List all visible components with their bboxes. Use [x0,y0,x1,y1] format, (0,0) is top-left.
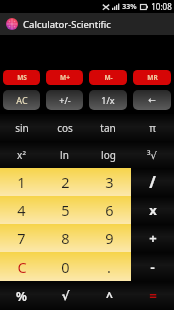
staticText: % [16,288,27,304]
staticText: 9 [105,228,114,248]
button[interactable]: 1/x [89,90,127,110]
staticText: ^ [106,288,113,304]
button[interactable]: % [0,281,43,310]
button[interactable]: M+ [46,70,83,85]
button[interactable]: MS [3,70,40,85]
staticText: AC [16,94,28,106]
staticText: x² [17,148,26,162]
button[interactable]: 2 [43,168,87,196]
button[interactable]: 3 [87,168,131,196]
staticText: Calculator-Scientific [23,18,111,31]
button[interactable]: x [131,196,174,224]
button[interactable]: log [86,141,130,169]
staticText: 1 [17,172,26,192]
staticText: C [17,257,27,277]
button[interactable]: ln [43,141,86,169]
staticText: - [150,258,155,276]
staticText: 2 [61,172,70,192]
button[interactable]: ← [133,90,171,110]
staticText: ³√ [147,148,157,162]
staticText: M+ [60,73,70,82]
staticText: ← [148,95,156,105]
button[interactable]: ³√ [130,141,174,169]
button[interactable]: +/- [46,90,83,110]
button[interactable]: - [131,252,174,281]
staticText: log [101,148,116,162]
staticText: 33% [122,2,137,12]
button[interactable]: + [131,224,174,252]
staticText: 10:08 [151,1,172,12]
staticText: +/- [59,94,71,106]
staticText: 3 [105,172,114,192]
staticText: 5 [61,200,70,220]
staticText: . [107,257,111,277]
button[interactable]: 9 [87,224,131,252]
staticText: 6 [105,200,114,220]
button[interactable]: 6 [87,196,131,224]
staticText: 7 [17,228,26,248]
staticText: √ [61,289,70,303]
button[interactable]: 5 [43,196,87,224]
button[interactable]: C [0,252,43,281]
staticText: 8 [61,228,70,248]
button[interactable]: 7 [0,224,43,252]
button[interactable]: cos [43,114,86,142]
staticText: ln [60,148,69,162]
button[interactable]: √ [43,281,87,310]
button[interactable]: . [87,252,131,281]
staticText: 0 [61,257,70,277]
button[interactable]: sin [0,114,43,142]
button[interactable]: / [131,168,174,196]
button[interactable]: 1 [0,168,43,196]
staticText: 1/x [101,94,115,106]
button[interactable]: 0 [43,252,87,281]
button[interactable]: M- [89,70,127,85]
button[interactable]: tan [86,114,130,142]
staticText: x [149,201,157,219]
button[interactable]: AC [3,90,40,110]
staticText: MS [17,73,27,82]
staticText: cos [57,121,73,135]
staticText: / [149,171,156,193]
button[interactable]: π [130,114,174,142]
staticText: + [149,229,157,247]
button[interactable]: 8 [43,224,87,252]
staticText: tan [100,121,116,135]
staticText: π [149,121,156,135]
button[interactable]: MR [133,70,171,85]
staticText: sin [15,121,29,135]
button[interactable]: = [131,281,174,310]
staticText: MR [147,73,158,82]
staticText: = [149,287,157,305]
button[interactable]: ^ [87,281,131,310]
staticText: 4 [17,200,26,220]
staticText: M- [104,73,113,82]
button[interactable]: x² [0,141,43,169]
button[interactable]: 4 [0,196,43,224]
